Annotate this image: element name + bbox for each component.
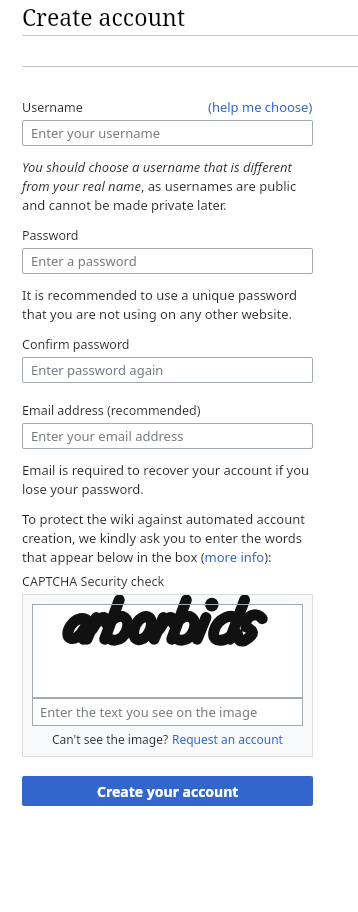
button[interactable]: Enter password again: [22, 357, 313, 383]
staticText: Email address (recommended): [22, 402, 201, 419]
staticText: You should choose a username that is dif…: [22, 158, 313, 214]
staticText: Username: [22, 99, 83, 116]
button[interactable]: Enter the text you see on the image: [32, 698, 303, 726]
staticText: Password: [22, 227, 79, 244]
button[interactable]: Enter your username: [22, 120, 313, 146]
staticText: Enter password again: [31, 361, 164, 379]
staticText: Enter a password: [31, 252, 137, 270]
button[interactable]: (help me choose): [208, 98, 313, 116]
staticText: Enter your email address: [31, 427, 184, 445]
staticText: Enter the text you see on the image: [40, 703, 258, 721]
staticText: CAPTCHA Security check: [22, 573, 165, 590]
staticText: Enter your username: [31, 124, 161, 142]
staticText: It is recommended to use a unique passwo…: [22, 286, 313, 323]
staticText: To protect the wiki against automated ac…: [22, 510, 313, 566]
staticText: Can't see the image?: [52, 731, 172, 747]
button[interactable]: Create your account: [22, 776, 313, 806]
staticText: Create account: [22, 1, 185, 32]
staticText: Email is required to recover your accoun…: [22, 461, 313, 498]
staticText: Request an account: [172, 731, 283, 747]
button[interactable]: Enter your email address: [22, 423, 313, 449]
staticText: Create your account: [97, 782, 239, 801]
button[interactable]: Enter a password: [22, 248, 313, 274]
button[interactable]: Request an account: [172, 731, 283, 747]
staticText: (help me choose): [208, 98, 313, 116]
staticText: Confirm password: [22, 336, 130, 353]
